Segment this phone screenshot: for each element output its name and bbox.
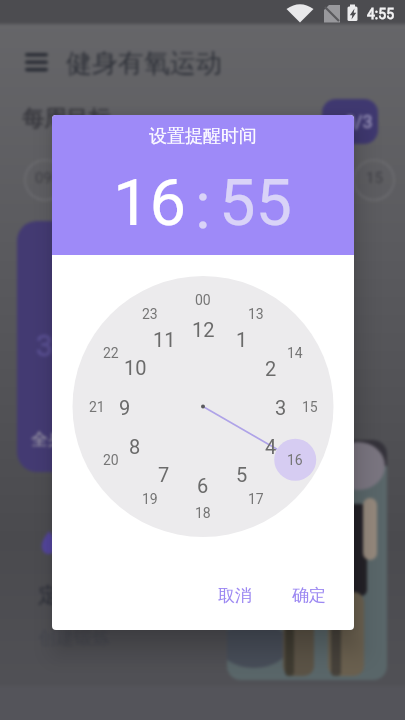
staticText: 14 — [287, 345, 303, 361]
staticText: 每周目标 — [22, 105, 110, 133]
button[interactable]: 取消 — [203, 573, 267, 617]
button[interactable] — [13, 38, 61, 86]
staticText: 18 — [195, 505, 211, 521]
staticText: 20 — [103, 452, 119, 468]
staticText: 创建锻炼 — [38, 627, 110, 650]
staticText: 13 — [248, 306, 264, 322]
staticText: 11 — [153, 328, 176, 351]
staticText: 15 — [366, 169, 383, 187]
staticText: 9 — [119, 396, 131, 419]
staticText: 10 — [124, 356, 147, 379]
staticText: 16 — [113, 165, 187, 229]
staticText: 4:55 — [367, 6, 394, 22]
staticText: 7 — [158, 463, 170, 486]
staticText: 15 — [302, 399, 318, 415]
staticText: 21 — [89, 399, 105, 415]
staticText: 23 — [142, 306, 158, 322]
staticText: 55 — [219, 165, 293, 229]
staticText: : — [195, 168, 211, 232]
staticText: 3 — [36, 328, 53, 363]
staticText: 确定 — [292, 585, 326, 606]
staticText: 全身 — [31, 429, 65, 450]
staticText: 5 — [236, 463, 248, 486]
staticText: 设置提醒时间 — [149, 125, 257, 148]
button[interactable]: 确定 — [277, 573, 341, 617]
staticText: 4 — [265, 435, 277, 458]
staticText: 19 — [142, 491, 158, 507]
button[interactable] — [227, 440, 387, 680]
staticText: 12 — [192, 318, 215, 341]
staticText: 2 — [265, 357, 277, 380]
staticText: 3 — [275, 396, 287, 419]
button[interactable]: 创建锻炼 — [38, 626, 178, 650]
staticText: 取消 — [218, 585, 252, 606]
staticText: 定制锻炼 — [38, 583, 122, 609]
staticText: 健身有氧运动 — [66, 47, 222, 79]
staticText: 00 — [195, 292, 211, 308]
staticText: 17 — [248, 491, 264, 507]
staticText: 22 — [103, 345, 119, 361]
staticText: 8 — [129, 435, 141, 458]
staticText: 09 — [35, 169, 52, 187]
staticText: 1 — [236, 328, 248, 351]
staticText: 6 — [197, 474, 209, 497]
staticText: 16 — [287, 452, 303, 468]
button[interactable] — [17, 221, 217, 472]
staticText: 0/3 — [345, 111, 373, 132]
